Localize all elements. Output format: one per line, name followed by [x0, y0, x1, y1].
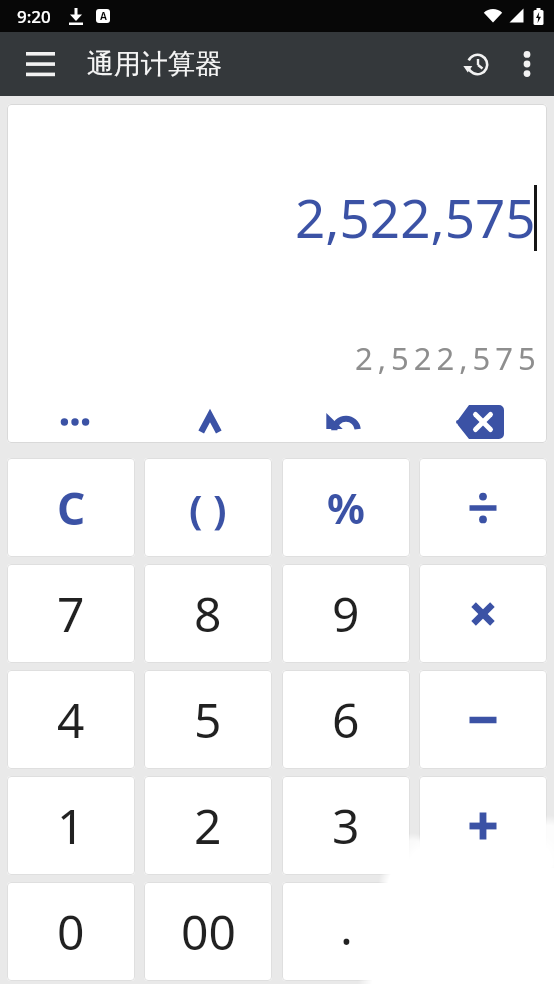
staticText: 0 — [57, 899, 85, 964]
staticText: ( ) — [189, 481, 227, 535]
button[interactable] — [412, 402, 547, 442]
button[interactable]: % — [282, 458, 410, 557]
staticText: 9 — [332, 581, 360, 646]
staticText: A — [100, 9, 107, 23]
button[interactable] — [500, 37, 554, 91]
button[interactable]: 3 — [282, 776, 410, 875]
button[interactable] — [12, 36, 68, 92]
staticText: 8 — [194, 581, 222, 646]
button[interactable]: ( ) — [144, 458, 272, 557]
button[interactable] — [419, 458, 547, 557]
staticText: % — [327, 479, 365, 536]
button[interactable]: 7 — [7, 564, 135, 663]
button[interactable] — [419, 564, 547, 663]
button[interactable]: 2 — [144, 776, 272, 875]
button[interactable] — [452, 40, 500, 88]
staticText: 2,522,575 — [295, 181, 536, 253]
staticText: 00 — [181, 899, 236, 964]
button[interactable]: 00 — [144, 882, 272, 981]
staticText: 2,522,575 — [355, 337, 541, 379]
staticText: 1 — [57, 793, 85, 858]
button[interactable] — [419, 776, 547, 875]
staticText: 2 — [194, 793, 222, 858]
staticText: 6 — [332, 687, 360, 752]
staticText: 3 — [332, 793, 360, 858]
button[interactable]: 8 — [144, 564, 272, 663]
button[interactable]: 0 — [7, 882, 135, 981]
staticText: C — [57, 478, 86, 538]
button[interactable]: 4 — [7, 670, 135, 769]
staticText: 通用计算器 — [87, 47, 222, 81]
button[interactable]: 6 — [282, 670, 410, 769]
staticText: . — [340, 894, 353, 959]
staticText: 5 — [194, 687, 222, 752]
button[interactable]: . — [282, 882, 410, 981]
button[interactable] — [7, 402, 142, 442]
button[interactable] — [142, 402, 277, 442]
button[interactable]: 1 — [7, 776, 135, 875]
button[interactable]: 9 — [282, 564, 410, 663]
staticText: 9:20 — [17, 5, 51, 28]
button[interactable]: 5 — [144, 670, 272, 769]
button[interactable] — [277, 402, 412, 442]
button[interactable]: C — [7, 458, 135, 557]
button[interactable] — [419, 670, 547, 769]
staticText: 7 — [57, 581, 85, 646]
staticText: 4 — [57, 687, 85, 752]
